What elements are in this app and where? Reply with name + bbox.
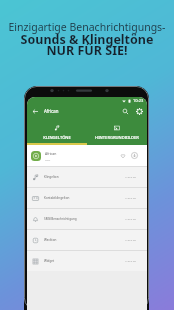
button[interactable]: Back bbox=[30, 106, 40, 116]
staticText: Kontaktklingelton bbox=[44, 196, 70, 200]
button[interactable]: Weckton bbox=[27, 230, 147, 250]
button[interactable]: Search bbox=[120, 106, 130, 116]
staticText: 1187.5 KB bbox=[125, 260, 136, 263]
staticText: SMS/Benachrichtigung bbox=[44, 217, 77, 221]
staticText: OGG bbox=[45, 158, 51, 161]
button[interactable]: Settings bbox=[134, 106, 144, 116]
staticText: 1187.5 KB bbox=[125, 239, 136, 242]
staticText: African bbox=[45, 151, 57, 156]
button[interactable]: SMS/Benachrichtigung bbox=[27, 209, 147, 229]
staticText: 1187.5 KB bbox=[125, 197, 136, 200]
staticText: 1187.5 KB bbox=[125, 218, 136, 221]
button[interactable]: Widget bbox=[27, 251, 147, 271]
staticText: African bbox=[44, 108, 59, 114]
button[interactable]: Klingelton bbox=[27, 167, 147, 187]
staticText: Sounds & Klingeltöne bbox=[0, 31, 174, 48]
staticText: Einzigartige Benachrichtigungs- bbox=[0, 20, 174, 34]
staticText: Weckton bbox=[44, 238, 57, 242]
staticText: 1187.5 KB bbox=[125, 176, 136, 179]
staticText: KLINGELTÖNE bbox=[43, 135, 71, 141]
button[interactable]: HINTERGRUNDBILDER bbox=[87, 118, 147, 145]
button[interactable]: African bbox=[27, 145, 147, 166]
staticText: Klingelton bbox=[44, 175, 59, 179]
button[interactable]: Kontaktklingelton bbox=[27, 188, 147, 208]
staticText: HINTERGRUNDBILDER bbox=[95, 135, 139, 141]
button[interactable]: KLINGELTÖNE bbox=[27, 118, 87, 145]
staticText: NUR FÜR SIE! bbox=[0, 42, 174, 59]
staticText: Widget bbox=[44, 259, 55, 263]
staticText: 10:23 bbox=[133, 98, 144, 103]
button[interactable]: Favorite bbox=[118, 151, 127, 160]
button[interactable]: Download bbox=[130, 151, 139, 160]
